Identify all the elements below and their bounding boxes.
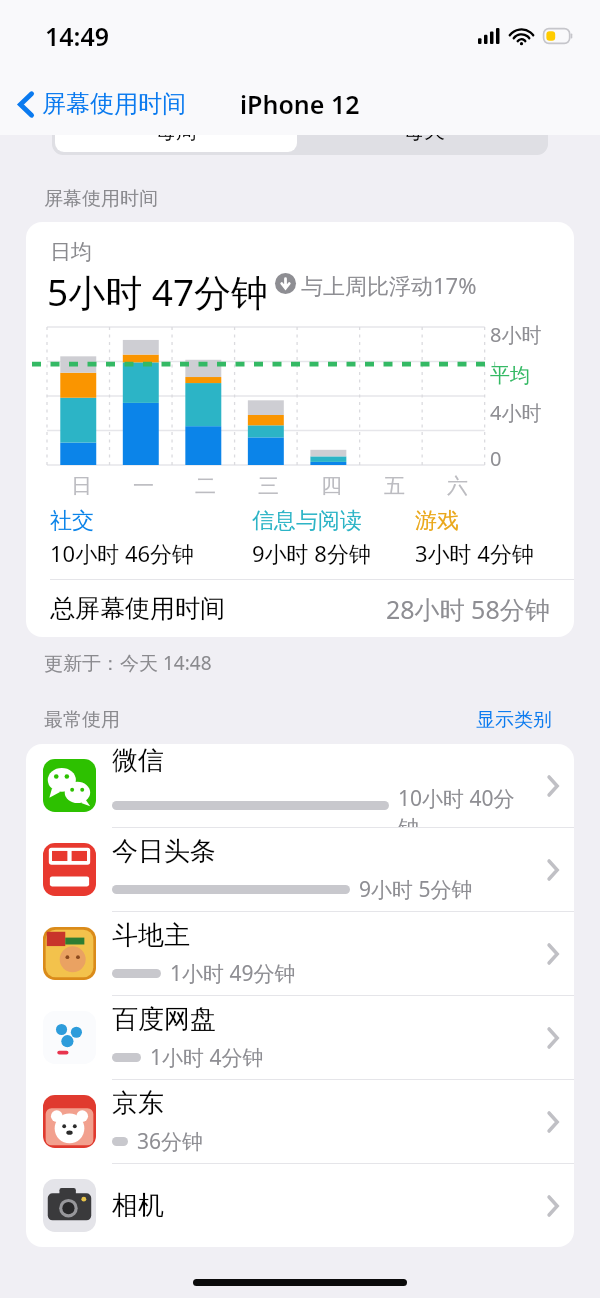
staticText: 屏幕使用时间 [44,187,158,211]
staticText: 游戏 [415,507,459,535]
button[interactable]: 返回 [12,81,192,127]
staticText: 六 [447,473,468,499]
button[interactable]: 总屏幕使用时间 [26,580,574,637]
staticText: 日均 [50,239,92,265]
button[interactable]: 百度网盘 [26,996,574,1079]
staticText: 京东 [112,1087,164,1120]
staticText: 斗地主 [112,919,190,952]
staticText: 最常使用 [44,708,120,732]
staticText: 日 [71,473,92,499]
staticText: 14:49 [45,19,110,53]
button[interactable]: 显示类别 [472,704,556,736]
staticText: 每天 [403,135,445,143]
staticText: 3小时 4分钟 [415,538,534,568]
staticText: 社交 [50,507,94,535]
staticText: 10小时 40分钟 [398,784,532,827]
staticText: iPhone 12 [240,87,360,121]
staticText: 信息与阅读 [252,507,362,535]
staticText: 0 [490,445,502,472]
button[interactable]: 微信 [26,744,574,827]
staticText: 一 [133,473,154,499]
staticText: 屏幕使用时间 [42,89,186,119]
staticText: 四 [321,473,342,499]
staticText: 二 [195,473,216,499]
staticText: 8小时 [490,321,542,348]
other: 返回 [18,91,34,118]
button[interactable]: 今日头条 [26,828,574,911]
staticText: 今日头条 [112,835,216,868]
staticText: 9小时 8分钟 [252,538,371,568]
staticText: 28小时 58分钟 [386,592,550,626]
staticText: 5小时 47分钟 [47,266,269,317]
staticText: 1小时 49分钟 [170,959,296,988]
button[interactable]: 相机 [26,1164,574,1247]
staticText: 相机 [112,1189,164,1222]
button[interactable]: 斗地主 [26,912,574,995]
staticText: 显示类别 [476,708,552,732]
staticText: 百度网盘 [112,1003,216,1036]
staticText: 三 [258,473,279,499]
staticText: 平均 [490,363,530,388]
staticText: 微信 [112,744,164,777]
button[interactable]: 京东 [26,1080,574,1163]
button[interactable]: 每天 [303,135,545,152]
button[interactable]: 每周 [55,135,297,152]
staticText: 10小时 46分钟 [50,538,195,568]
staticText: 总屏幕使用时间 [50,593,225,624]
staticText: 更新于：今天 14:48 [44,650,212,676]
staticText: 36分钟 [137,1127,204,1156]
staticText: 五 [384,473,405,499]
staticText: 1小时 4分钟 [150,1043,264,1072]
staticText: 每周 [155,135,197,143]
staticText: 4小时 [490,399,542,426]
staticText: 与上周比浮动17% [301,270,477,300]
staticText: 9小时 5分钟 [359,875,473,904]
